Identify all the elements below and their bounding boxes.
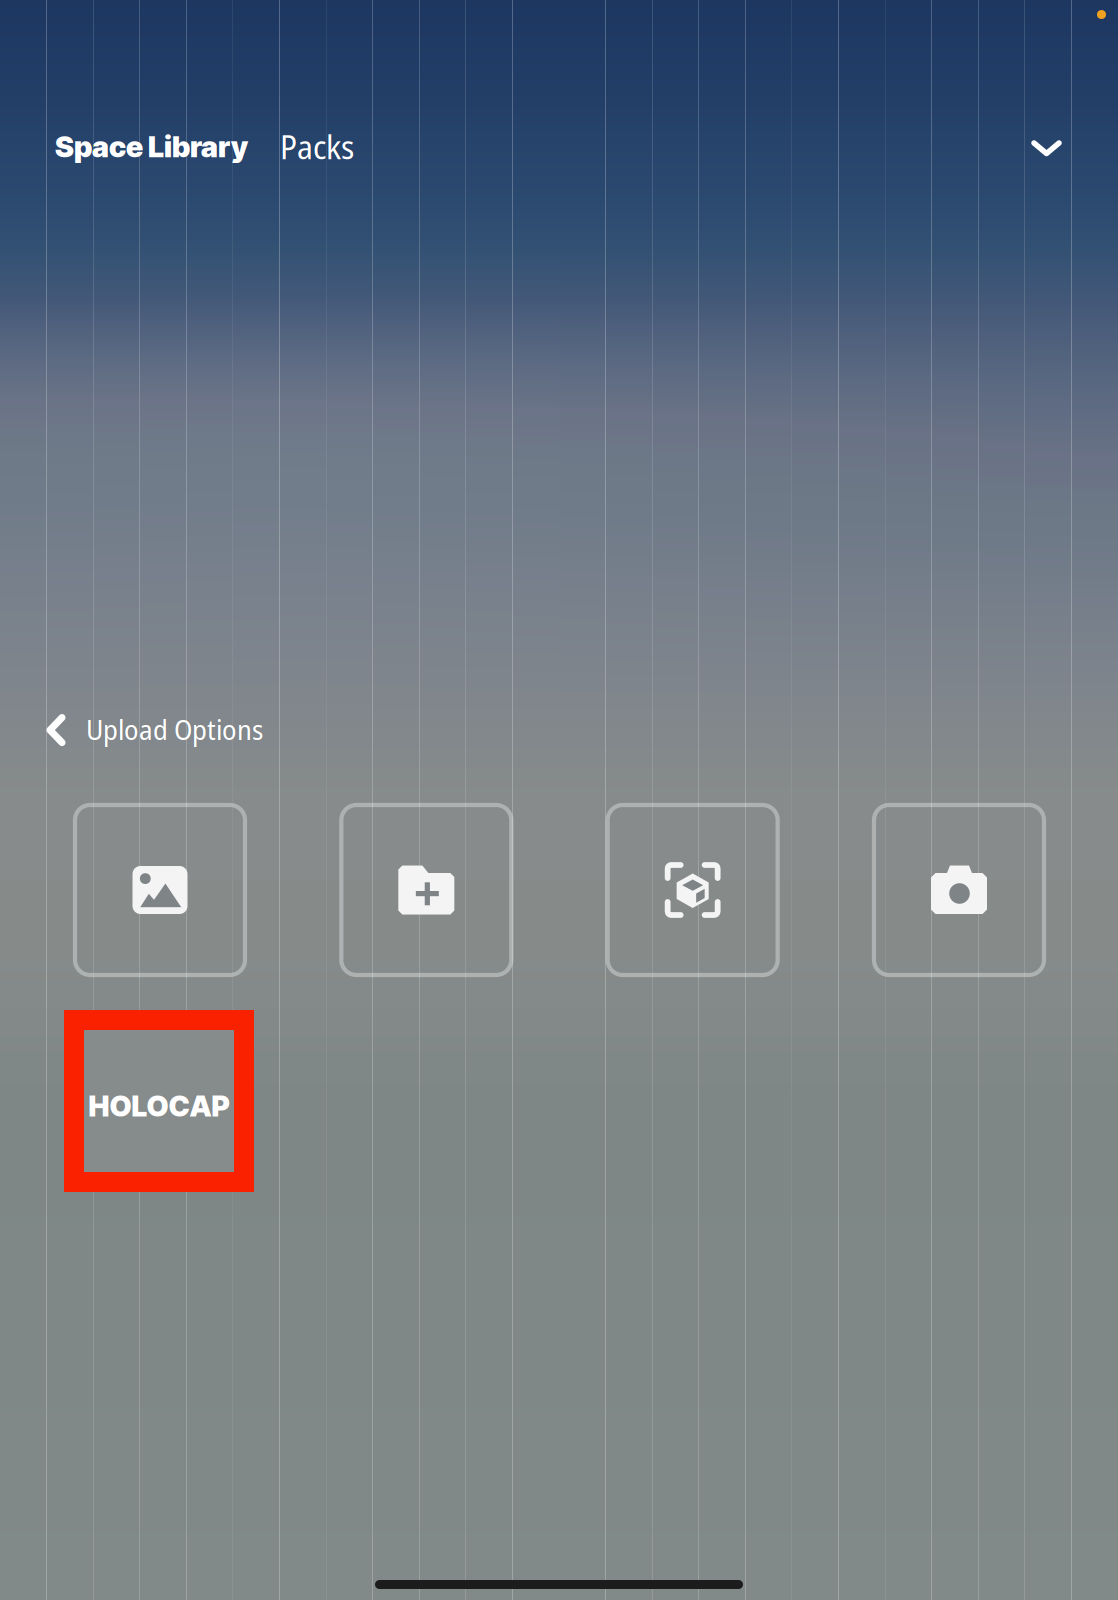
button[interactable]: Scan 3D object <box>608 805 778 975</box>
button[interactable]: Collapse library <box>1017 126 1076 172</box>
staticText: Packs <box>280 124 354 169</box>
staticText: Upload Options <box>86 710 263 748</box>
button[interactable]: New folder <box>341 805 511 975</box>
button[interactable]: Upload Options <box>46 710 263 748</box>
staticText: HOLOCAP <box>88 1089 229 1123</box>
button[interactable]: Photo library <box>75 805 245 975</box>
button[interactable]: Camera <box>874 805 1044 975</box>
button[interactable]: Packs <box>248 124 354 169</box>
staticText: Space Library <box>55 129 248 164</box>
button[interactable]: HOLOCAP <box>64 1010 254 1192</box>
button[interactable]: Space Library <box>55 129 248 164</box>
